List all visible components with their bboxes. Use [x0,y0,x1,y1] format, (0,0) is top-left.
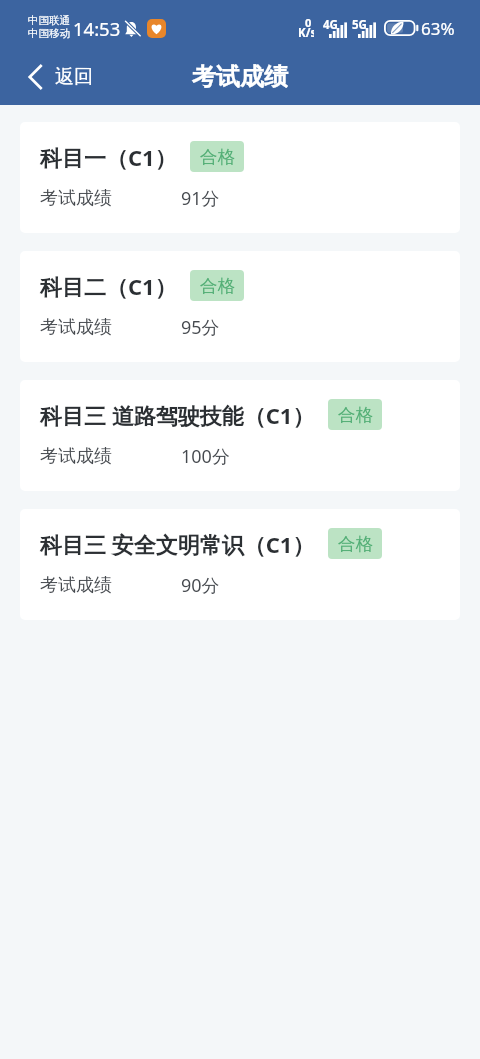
staticText: 63% [421,17,455,40]
staticText: 科目二（C1） [40,271,177,301]
button[interactable]: 科目三 道路驾驶技能（C1） [20,380,460,491]
staticText: 考试成绩 [192,62,288,92]
button[interactable]: 科目一（C1） [20,122,460,233]
staticText: 考试成绩 [40,187,181,210]
staticText: 14:53 [73,16,121,41]
staticText: 0 [305,15,312,30]
staticText: 91分 [181,186,220,211]
staticText: 90分 [181,573,220,598]
button[interactable]: 科目三 安全文明常识（C1） [20,509,460,620]
staticText: 中国联通 [28,14,70,27]
staticText: 合格 [200,275,235,297]
staticText: 考试成绩 [40,316,181,339]
staticText: 科目一（C1） [40,142,177,172]
staticText: 考试成绩 [40,445,181,468]
staticText: 合格 [338,533,373,555]
staticText: 科目三 安全文明常识（C1） [40,529,315,559]
staticText: 考试成绩 [40,574,181,597]
button[interactable]: 返回 [0,48,115,105]
staticText: 科目三 道路驾驶技能（C1） [40,400,315,430]
staticText: 4G [323,17,338,33]
staticText: 合格 [338,404,373,426]
staticText: 返回 [55,65,93,89]
staticText: 95分 [181,315,220,340]
staticText: 100分 [181,444,230,469]
staticText: K/s [298,25,314,41]
staticText: 5G [352,17,367,33]
button[interactable]: 科目二（C1） [20,251,460,362]
staticText: 合格 [200,146,235,168]
staticText: 中国移动 [28,27,70,40]
